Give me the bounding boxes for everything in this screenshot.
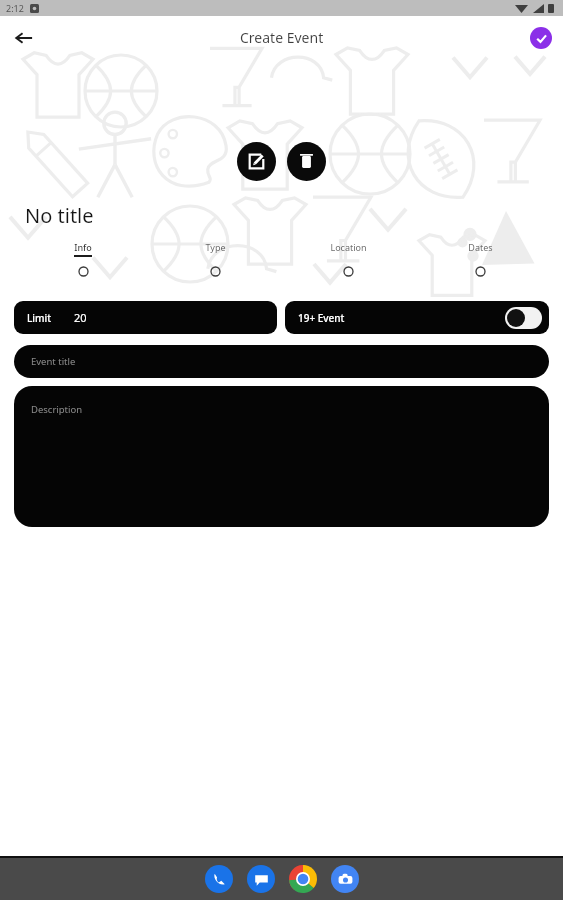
button[interactable]: Delete image — [287, 142, 326, 181]
staticText: Event title — [31, 355, 76, 368]
button[interactable]: Back — [8, 22, 40, 54]
button[interactable]: Edit image — [237, 142, 276, 181]
staticText: Create Event — [240, 28, 324, 47]
button[interactable]: Limit — [14, 301, 277, 334]
button[interactable]: Location — [298, 241, 398, 277]
staticText: 2:12 — [6, 2, 24, 14]
button[interactable]: Event title — [14, 345, 549, 378]
button[interactable]: Confirm — [530, 27, 552, 49]
button[interactable]: Info — [33, 241, 133, 277]
staticText: Dates — [468, 241, 493, 253]
button[interactable]: Dates — [430, 241, 530, 277]
button[interactable]: Messages — [247, 865, 275, 893]
button[interactable]: Description — [14, 386, 549, 527]
button[interactable]: Phone — [205, 865, 233, 893]
button[interactable]: 19+ Event — [285, 301, 549, 334]
button[interactable]: Camera — [331, 865, 359, 893]
staticText: 19+ Event — [298, 311, 345, 325]
button[interactable]: Type — [165, 241, 265, 277]
staticText: Limit — [27, 311, 52, 325]
staticText: No title — [25, 202, 94, 229]
staticText: Info — [74, 241, 92, 253]
staticText: Type — [205, 241, 226, 253]
button[interactable]: 19+ Event toggle — [505, 307, 542, 329]
staticText: Location — [330, 241, 367, 253]
staticText: Description — [31, 403, 83, 416]
button[interactable]: Chrome — [289, 865, 317, 893]
staticText: 20 — [74, 310, 87, 325]
